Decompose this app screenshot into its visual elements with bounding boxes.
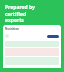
- button[interactable]: [47, 35, 59, 38]
- staticText: Nutrition: [5, 27, 19, 31]
- staticText: Prepared by certified experts: [5, 4, 35, 23]
